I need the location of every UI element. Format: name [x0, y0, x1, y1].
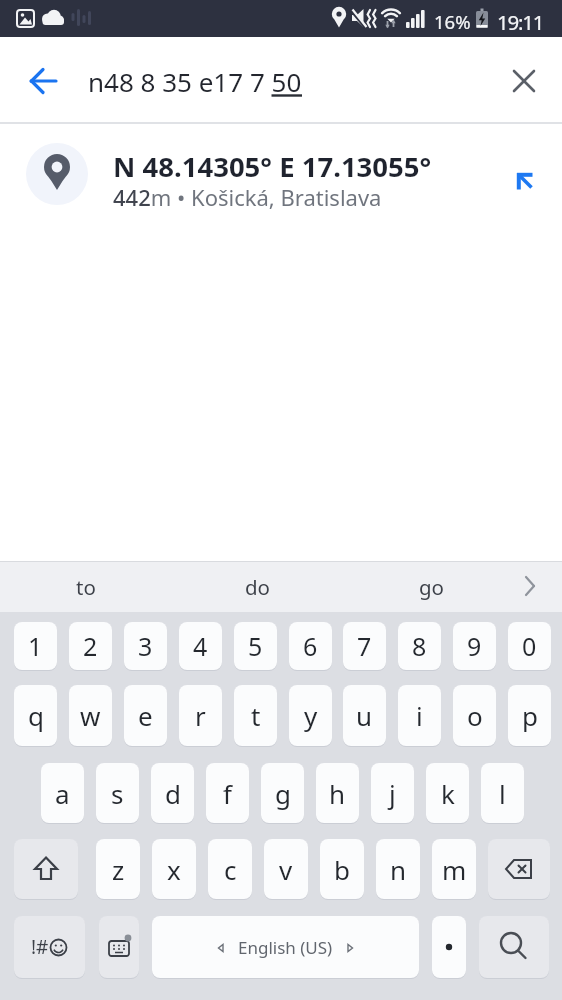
button[interactable]: z [96, 839, 140, 899]
button[interactable]: 3 [124, 622, 167, 670]
button[interactable]: 7 [343, 622, 386, 670]
staticText: N 48.14305° E 17.13055° [113, 148, 432, 185]
button[interactable] [479, 916, 549, 978]
staticText: go [419, 573, 445, 601]
staticText: v [279, 852, 293, 887]
staticText: p [522, 698, 538, 733]
staticText: j [389, 776, 396, 811]
staticText: w [80, 698, 101, 733]
staticText: e [138, 698, 153, 733]
button[interactable]: 4 [179, 622, 222, 670]
button[interactable]: 0 [508, 622, 551, 670]
staticText: 16% [434, 9, 471, 34]
staticText: m [442, 852, 467, 887]
button[interactable] [488, 839, 550, 899]
staticText: f [223, 776, 232, 811]
button[interactable] [20, 59, 64, 103]
button[interactable]: w [69, 685, 112, 746]
button[interactable]: u [343, 685, 386, 746]
staticText: h [329, 776, 346, 811]
button[interactable]: s [96, 763, 139, 823]
button[interactable]: f [206, 763, 249, 823]
button[interactable]: 8 [398, 622, 441, 670]
button[interactable]: m [432, 839, 476, 899]
button[interactable]: i [398, 685, 441, 746]
button[interactable]: o [453, 685, 496, 746]
staticText: 7 [357, 629, 372, 663]
button[interactable]: d [151, 763, 194, 823]
button[interactable]: p [508, 685, 551, 746]
button[interactable]: 6 [289, 622, 332, 670]
staticText: q [28, 698, 44, 733]
button[interactable]: x [152, 839, 196, 899]
button[interactable]: 5 [234, 622, 277, 670]
staticText: k [441, 776, 455, 811]
staticText: 6 [303, 629, 318, 663]
staticText: c [224, 852, 237, 887]
staticText: 4 [193, 629, 208, 663]
staticText: d [165, 776, 181, 811]
staticText: n [390, 852, 407, 887]
staticText: u [356, 698, 373, 733]
staticText: z [112, 852, 125, 887]
staticText: a [55, 776, 70, 811]
staticText: s [111, 776, 124, 811]
staticText: 8 [412, 629, 427, 663]
staticText: 1 [28, 629, 43, 663]
staticText: 5 [248, 629, 263, 663]
staticText: y [304, 698, 318, 733]
staticText: to [76, 573, 96, 601]
staticText: English (US) [238, 936, 333, 959]
button[interactable]: j [371, 763, 414, 823]
button[interactable] [99, 916, 139, 978]
staticText: 0 [522, 629, 537, 663]
button[interactable] [502, 59, 546, 103]
button[interactable]: y [289, 685, 332, 746]
button[interactable]: g [261, 763, 304, 823]
button[interactable] [14, 839, 78, 899]
staticText: n48 8 35 e17 7 50 [88, 64, 302, 99]
button[interactable]: go [382, 561, 482, 612]
button[interactable]: b [320, 839, 364, 899]
button[interactable]: 1 [14, 622, 57, 670]
staticText: g [275, 776, 291, 811]
button[interactable]: n [376, 839, 420, 899]
staticText: b [334, 852, 350, 887]
button[interactable]: r [179, 685, 222, 746]
button[interactable]: !# [14, 916, 85, 978]
staticText: l [499, 776, 506, 811]
staticText: !# [31, 934, 49, 960]
button[interactable]: do [208, 561, 308, 612]
staticText: i [416, 698, 423, 733]
button[interactable]: 9 [453, 622, 496, 670]
button[interactable]: v [264, 839, 308, 899]
button[interactable]: c [208, 839, 252, 899]
button[interactable]: q [14, 685, 57, 746]
button[interactable]: k [426, 763, 469, 823]
button[interactable]: a [41, 763, 84, 823]
staticText: r [195, 698, 206, 733]
staticText: 9 [467, 629, 482, 663]
staticText: 3 [138, 629, 153, 663]
button[interactable]: e [124, 685, 167, 746]
staticText: x [167, 852, 181, 887]
button[interactable]: to [36, 561, 136, 612]
staticText: o [467, 698, 483, 733]
staticText: do [245, 573, 271, 601]
button[interactable]: l [481, 763, 524, 823]
button[interactable]: h [316, 763, 359, 823]
staticText: 19:11 [497, 8, 544, 36]
staticText: 2 [83, 629, 98, 663]
button[interactable]: 2 [69, 622, 112, 670]
staticText: t [251, 698, 261, 733]
button[interactable]: N 48.14305° E 17.13055° [0, 124, 562, 224]
button[interactable]: t [234, 685, 277, 746]
button[interactable] [432, 916, 466, 978]
button[interactable]: English (US) [152, 916, 419, 978]
staticText: 442m • Košická, Bratislava [113, 182, 382, 212]
